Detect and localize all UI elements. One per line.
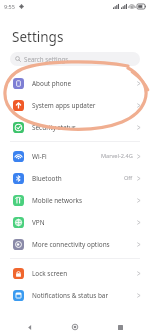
button[interactable]: Home: [67, 319, 83, 335]
staticText: 9:55: [4, 3, 15, 10]
button[interactable]: Search settings: [10, 52, 140, 66]
button[interactable]: Back: [22, 319, 38, 335]
staticText: Security status: [32, 123, 76, 132]
staticText: Off: [124, 174, 133, 182]
staticText: Notifications & status bar: [32, 291, 109, 300]
button[interactable]: System apps updater: [0, 94, 150, 116]
button[interactable]: VPN: [0, 211, 150, 233]
button[interactable]: About phone: [0, 72, 150, 94]
staticText: Settings: [12, 28, 64, 46]
staticText: System apps updater: [32, 101, 96, 110]
button[interactable]: Wi-Fi: [0, 145, 150, 167]
staticText: About phone: [32, 79, 72, 88]
staticText: Wi-Fi: [32, 152, 47, 161]
staticText: Search settings: [24, 55, 69, 63]
staticText: Marvel-2.4G: [101, 152, 133, 160]
button[interactable]: Recents: [112, 319, 128, 335]
button[interactable]: Security status: [0, 116, 150, 138]
button[interactable]: Bluetooth: [0, 167, 150, 189]
button[interactable]: Notifications & status bar: [0, 284, 150, 306]
staticText: More connectivity options: [32, 240, 110, 249]
staticText: VPN: [32, 218, 45, 227]
button[interactable]: Mobile networks: [0, 189, 150, 211]
staticText: Bluetooth: [32, 174, 62, 183]
button[interactable]: Lock screen: [0, 262, 150, 284]
staticText: Lock screen: [32, 269, 68, 278]
button[interactable]: More connectivity options: [0, 233, 150, 255]
staticText: Mobile networks: [32, 196, 83, 205]
